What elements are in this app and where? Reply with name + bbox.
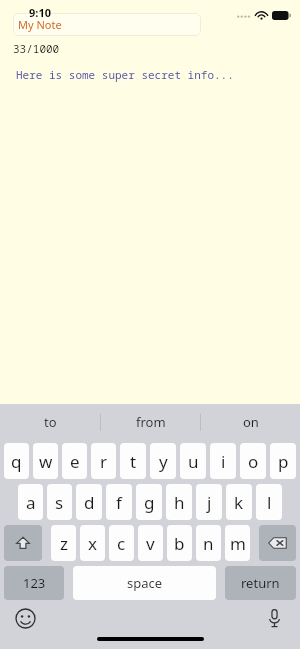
- staticText: return: [241, 574, 280, 592]
- button[interactable]: s: [47, 484, 72, 520]
- button[interactable]: m: [225, 525, 250, 561]
- button[interactable]: y: [150, 443, 176, 479]
- button[interactable]: Dictation: [262, 606, 286, 630]
- staticText: My Note: [18, 17, 62, 32]
- staticText: on: [243, 413, 259, 431]
- staticText: i: [221, 450, 226, 473]
- staticText: a: [26, 491, 36, 514]
- staticText: g: [144, 491, 155, 514]
- button[interactable]: i: [210, 443, 236, 479]
- button[interactable]: h: [166, 484, 192, 520]
- button[interactable]: g: [136, 484, 162, 520]
- button[interactable]: a: [18, 484, 43, 520]
- staticText: n: [203, 532, 214, 555]
- button[interactable]: return: [225, 566, 296, 600]
- button[interactable]: w: [33, 443, 58, 479]
- staticText: 9:10: [29, 5, 51, 20]
- button[interactable]: d: [76, 484, 102, 520]
- staticText: o: [248, 450, 259, 473]
- button[interactable]: n: [196, 525, 221, 561]
- button[interactable]: j: [196, 484, 222, 520]
- staticText: q: [11, 450, 22, 473]
- button[interactable]: Backspace: [259, 525, 296, 561]
- staticText: l: [267, 491, 272, 514]
- staticText: k: [234, 491, 244, 514]
- button[interactable]: Shift: [4, 525, 42, 561]
- staticText: 123: [23, 574, 46, 592]
- staticText: s: [55, 491, 64, 514]
- button[interactable]: v: [138, 525, 163, 561]
- button[interactable]: q: [4, 443, 29, 479]
- button[interactable]: My Note: [13, 13, 201, 36]
- button[interactable]: space: [73, 566, 216, 600]
- button[interactable]: from: [101, 404, 200, 440]
- staticText: t: [130, 450, 137, 473]
- button[interactable]: x: [80, 525, 105, 561]
- button[interactable]: on: [201, 404, 300, 440]
- button[interactable]: t: [120, 443, 146, 479]
- staticText: b: [174, 532, 185, 555]
- button[interactable]: e: [62, 443, 87, 479]
- staticText: j: [207, 491, 212, 514]
- button[interactable]: o: [240, 443, 266, 479]
- staticText: u: [188, 450, 199, 473]
- button[interactable]: l: [256, 484, 282, 520]
- button[interactable]: r: [91, 443, 116, 479]
- staticText: v: [146, 532, 155, 555]
- staticText: z: [60, 532, 68, 555]
- staticText: to: [44, 413, 57, 431]
- staticText: from: [136, 413, 166, 431]
- button[interactable]: to: [0, 404, 100, 440]
- staticText: y: [159, 450, 168, 473]
- button[interactable]: u: [180, 443, 206, 479]
- button[interactable]: c: [109, 525, 134, 561]
- staticText: h: [174, 491, 185, 514]
- button[interactable]: z: [51, 525, 76, 561]
- staticText: 33/1000: [13, 41, 60, 56]
- staticText: space: [127, 574, 163, 592]
- staticText: p: [278, 450, 289, 473]
- staticText: Here is some super secret info...: [16, 67, 234, 82]
- button[interactable]: p: [270, 443, 296, 479]
- staticText: d: [84, 491, 95, 514]
- button[interactable]: b: [167, 525, 192, 561]
- staticText: m: [230, 532, 246, 555]
- staticText: x: [88, 532, 97, 555]
- staticText: c: [117, 532, 126, 555]
- staticText: e: [70, 450, 80, 473]
- staticText: r: [100, 450, 108, 473]
- button[interactable]: k: [226, 484, 252, 520]
- staticText: w: [39, 450, 53, 473]
- button[interactable]: f: [106, 484, 132, 520]
- staticText: f: [116, 491, 122, 514]
- button[interactable]: 123: [4, 566, 64, 600]
- button[interactable]: Emoji keyboard: [13, 606, 37, 630]
